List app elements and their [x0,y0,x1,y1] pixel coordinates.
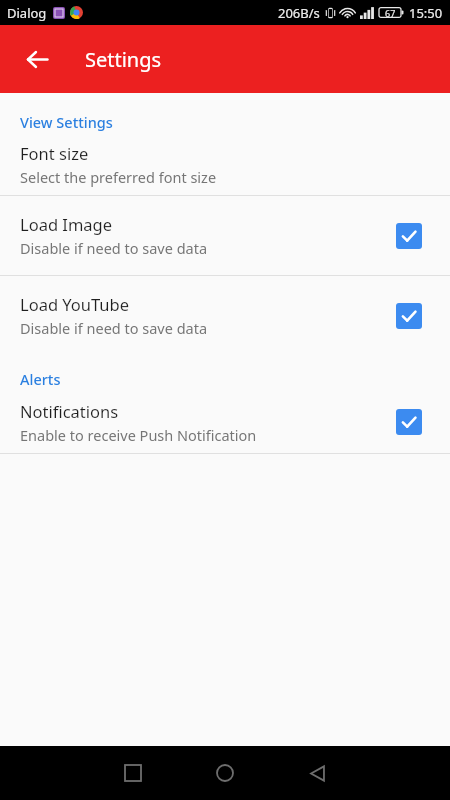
button[interactable]: Home [201,749,249,797]
staticText: Load YouTube [20,293,130,315]
staticText: Load Image [20,213,113,235]
button[interactable]: Toggle [392,299,426,333]
staticText: 15:50 [409,4,443,22]
staticText: Dialog [7,4,47,22]
button[interactable]: Back [293,749,341,797]
button[interactable]: Font size [0,134,450,195]
staticText: View Settings [20,112,113,132]
staticText: Font size [20,142,89,164]
button[interactable]: Recent apps [109,749,157,797]
button[interactable]: Load YouTube [0,276,450,355]
button[interactable]: Toggle [392,219,426,253]
staticText: Disable if need to save data [20,238,208,258]
staticText: Disable if need to save data [20,318,208,338]
button[interactable]: Back [13,35,61,83]
staticText: Enable to receive Push Notification [20,425,257,445]
staticText: Settings [85,46,162,73]
button[interactable]: Load Image [0,196,450,275]
staticText: Alerts [20,369,61,389]
staticText: Notifications [20,400,119,422]
staticText: 206B/s [278,4,320,22]
button[interactable]: Toggle [392,405,426,439]
staticText: 67 [385,7,396,19]
staticText: Select the preferred font size [20,167,217,187]
button[interactable]: Notifications [0,391,450,453]
